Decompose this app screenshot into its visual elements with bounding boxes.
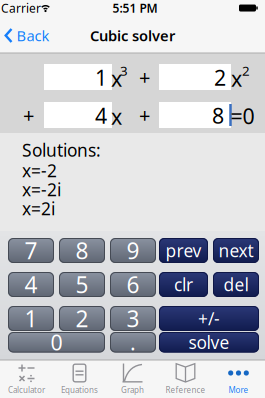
button[interactable]: clr: [159, 272, 208, 297]
staticText: x=-2: [22, 159, 57, 182]
button[interactable]: 2: [59, 306, 105, 331]
button[interactable]: 5: [59, 272, 105, 297]
staticText: 5:51 PM: [112, 0, 157, 16]
staticText: Reference: [165, 385, 205, 395]
button[interactable]: Reference: [159, 360, 212, 398]
button[interactable]: Back: [4, 26, 49, 45]
button[interactable]: Calculator: [0, 360, 53, 398]
button[interactable]: 8: [159, 102, 231, 128]
staticText: Cubic solver: [90, 26, 175, 45]
staticText: +: [23, 102, 34, 128]
staticText: More: [228, 385, 248, 395]
button[interactable]: del: [213, 272, 259, 297]
staticText: 5: [75, 269, 88, 299]
button[interactable]: 2: [159, 64, 231, 90]
button[interactable]: 4: [8, 272, 54, 297]
button[interactable]: 3: [110, 306, 156, 331]
staticText: x: [111, 64, 122, 93]
staticText: 4: [24, 269, 37, 299]
staticText: solve: [188, 331, 229, 354]
staticText: clr: [174, 273, 193, 296]
staticText: +/-: [198, 307, 220, 330]
button[interactable]: 8: [59, 238, 105, 263]
staticText: del: [223, 273, 248, 296]
staticText: 2: [214, 63, 226, 92]
staticText: =0: [230, 102, 254, 130]
button[interactable]: 7: [8, 238, 54, 263]
staticText: prev: [165, 239, 201, 262]
staticText: x: [231, 64, 242, 93]
staticText: +: [139, 64, 150, 90]
staticText: 3: [126, 303, 139, 333]
staticText: 1: [24, 303, 37, 333]
button[interactable]: next: [213, 238, 259, 263]
staticText: x: [111, 102, 122, 131]
staticText: 4: [95, 101, 107, 130]
staticText: 0: [50, 328, 62, 356]
staticText: Calculator: [8, 385, 45, 395]
staticText: 1: [95, 63, 107, 92]
staticText: 2: [75, 303, 88, 333]
staticText: 9: [126, 235, 139, 265]
staticText: 8: [212, 101, 224, 130]
button[interactable]: 0: [8, 332, 105, 352]
staticText: next: [218, 239, 253, 262]
staticText: 3: [120, 62, 128, 79]
staticText: 2: [242, 62, 250, 79]
button[interactable]: 1: [8, 306, 54, 331]
staticText: x=2i: [22, 197, 55, 220]
button[interactable]: +/-: [159, 306, 259, 331]
button[interactable]: Graph: [106, 360, 159, 398]
staticText: .: [130, 328, 136, 356]
button[interactable]: More: [212, 360, 265, 398]
staticText: 6: [126, 269, 139, 299]
button[interactable]: .: [110, 332, 156, 352]
button[interactable]: Equations: [53, 360, 106, 398]
button[interactable]: 9: [110, 238, 156, 263]
staticText: Equations: [61, 385, 98, 395]
button[interactable]: 6: [110, 272, 156, 297]
staticText: x=-2i: [22, 178, 61, 201]
staticText: 7: [24, 235, 37, 265]
staticText: Solutions:: [22, 138, 101, 161]
staticText: Graph: [121, 385, 144, 395]
button[interactable]: 4: [44, 102, 112, 128]
button[interactable]: solve: [159, 332, 259, 352]
staticText: Back: [16, 26, 49, 45]
staticText: Carrier: [1, 0, 41, 16]
button[interactable]: prev: [159, 238, 208, 263]
staticText: +: [139, 102, 150, 128]
button[interactable]: 1: [44, 64, 112, 90]
staticText: 8: [75, 235, 88, 265]
